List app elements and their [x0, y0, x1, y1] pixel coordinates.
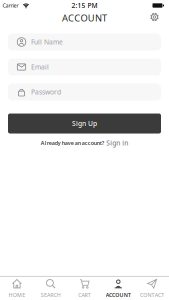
staticText: Email: [31, 63, 49, 71]
button[interactable]: Settings: [150, 12, 159, 21]
staticText: SEARCH: [41, 291, 61, 298]
staticText: Full Name: [31, 38, 63, 46]
button[interactable]: Email: [8, 58, 161, 75]
button[interactable]: Sign in: [106, 138, 128, 147]
staticText: Sign Up: [72, 119, 97, 128]
button[interactable]: Sign Up: [8, 113, 161, 133]
button[interactable]: HOME: [0, 279, 34, 298]
button[interactable]: Password: [8, 83, 161, 100]
button[interactable]: SEARCH: [34, 279, 68, 298]
button[interactable]: Full Name: [8, 33, 161, 50]
button[interactable]: CART: [68, 279, 101, 298]
staticText: CONTACT: [140, 291, 164, 298]
staticText: 2:15 PM: [71, 1, 97, 10]
staticText: Carrier: [2, 2, 18, 9]
staticText: Already have an account?: [41, 139, 104, 146]
button[interactable]: ACCOUNT: [101, 279, 135, 298]
staticText: Sign in: [106, 138, 128, 147]
staticText: ACCOUNT: [62, 12, 107, 24]
staticText: ACCOUNT: [106, 291, 131, 298]
staticText: CART: [78, 291, 91, 298]
button[interactable]: CONTACT: [135, 279, 169, 298]
staticText: HOME: [9, 291, 25, 298]
staticText: Password: [31, 88, 61, 96]
